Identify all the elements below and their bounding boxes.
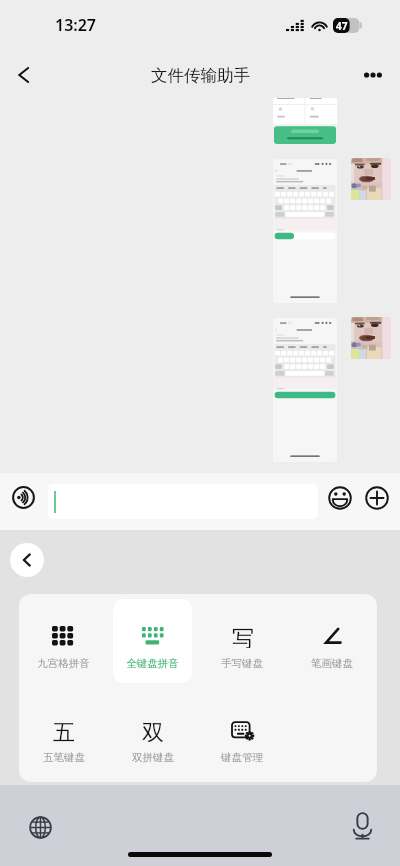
staticText: 五 — [53, 719, 75, 742]
button[interactable]: Voice input — [346, 810, 378, 842]
button[interactable]: 键盘管理 — [202, 693, 282, 777]
button[interactable]: 笔画键盘 — [292, 599, 372, 683]
staticText: 47 — [336, 19, 348, 33]
staticText: 写 — [232, 625, 254, 648]
button[interactable]: Sender avatar — [351, 317, 391, 359]
staticText: 九宫格拼音 — [37, 657, 90, 670]
staticText: 键盘管理 — [221, 751, 263, 764]
button[interactable]: Screenshot image message — [273, 318, 337, 462]
button[interactable]: Collapse keyboard panel — [10, 543, 44, 577]
button[interactable]: Sender avatar — [351, 158, 391, 200]
button[interactable]: Back — [2, 54, 44, 96]
staticText: 五笔键盘 — [43, 751, 85, 764]
button[interactable] — [48, 484, 318, 519]
button[interactable]: 五 — [24, 693, 103, 777]
staticText: 手写键盘 — [221, 657, 263, 670]
button[interactable]: 九宫格拼音 — [24, 599, 103, 683]
button[interactable]: 写 — [202, 599, 282, 683]
button[interactable]: Switch input language — [26, 813, 54, 841]
button[interactable]: More functions — [356, 480, 398, 515]
button[interactable]: Voice input — [2, 480, 44, 515]
staticText: 双拼键盘 — [132, 751, 174, 764]
button[interactable]: 双 — [113, 693, 192, 777]
button[interactable]: More options — [352, 54, 394, 96]
button[interactable]: Screenshot image message — [273, 98, 337, 144]
staticText: 13:27 — [55, 14, 97, 36]
staticText: 笔画键盘 — [311, 657, 353, 670]
button[interactable]: Screenshot image message — [273, 159, 337, 303]
button[interactable]: 全键盘拼音 — [113, 599, 192, 683]
staticText: 全键盘拼音 — [126, 657, 179, 670]
staticText: 文件传输助手 — [151, 65, 250, 86]
button[interactable]: Emoji — [319, 480, 361, 515]
staticText: 双 — [142, 719, 164, 742]
